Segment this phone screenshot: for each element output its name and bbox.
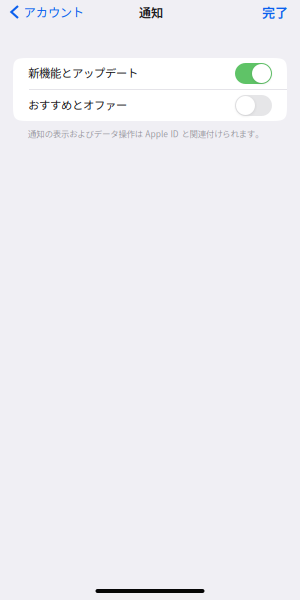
button[interactable]: アカウント — [0, 0, 92, 24]
staticText: 新機能とアップデート — [28, 64, 138, 81]
staticText: おすすめとオファー — [28, 96, 127, 113]
staticText: アカウント — [24, 3, 84, 21]
button[interactable]: 完了 — [252, 0, 300, 24]
staticText: 完了 — [262, 2, 288, 21]
staticText: 通知の表示およびデータ操作は Apple ID と関連付けられます。 — [28, 127, 263, 140]
staticText: 通知 — [139, 3, 163, 21]
button[interactable]: 新機能とアップデート — [13, 58, 287, 89]
button[interactable]: おすすめとオファー — [13, 90, 287, 121]
